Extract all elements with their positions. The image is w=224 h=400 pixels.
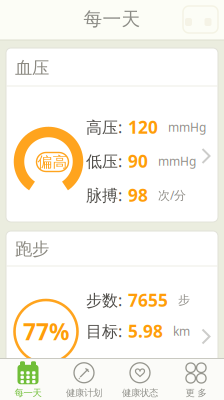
staticText: 步数: bbox=[86, 289, 122, 311]
button[interactable]: 健康状态 bbox=[112, 360, 168, 400]
button[interactable]: 血压 bbox=[6, 48, 218, 222]
staticText: 脉搏: bbox=[86, 184, 122, 206]
staticText: 步 bbox=[178, 293, 190, 307]
staticText: 高压: bbox=[86, 116, 122, 138]
staticText: 5.98 bbox=[128, 319, 163, 342]
staticText: km bbox=[173, 323, 190, 339]
staticText: 目标: bbox=[86, 320, 122, 342]
button[interactable]: 每一天 bbox=[0, 360, 56, 400]
staticText: 健康计划 bbox=[66, 387, 102, 399]
staticText: 健康状态 bbox=[122, 387, 158, 399]
staticText: 98 bbox=[128, 183, 148, 206]
button[interactable]: 健康计划 bbox=[56, 360, 112, 400]
staticText: 偏高 bbox=[37, 153, 67, 171]
staticText: 血压 bbox=[15, 57, 49, 79]
staticText: 跑步 bbox=[15, 238, 49, 260]
staticText: 更 多 bbox=[185, 387, 206, 399]
staticText: 90 bbox=[128, 149, 148, 172]
button[interactable]: 跑步 bbox=[6, 231, 218, 400]
staticText: 7655 bbox=[128, 288, 168, 311]
staticText: 每一天 bbox=[83, 7, 140, 30]
staticText: 120 bbox=[128, 115, 158, 138]
staticText: 每一天 bbox=[14, 387, 41, 399]
button[interactable]: 更 多 bbox=[168, 360, 224, 400]
staticText: 低压: bbox=[86, 150, 122, 172]
staticText: 77% bbox=[23, 316, 69, 346]
button[interactable] bbox=[183, 6, 218, 33]
staticText: mmHg bbox=[158, 153, 196, 169]
staticText: mmHg bbox=[168, 119, 206, 135]
staticText: 次/分 bbox=[158, 187, 186, 203]
